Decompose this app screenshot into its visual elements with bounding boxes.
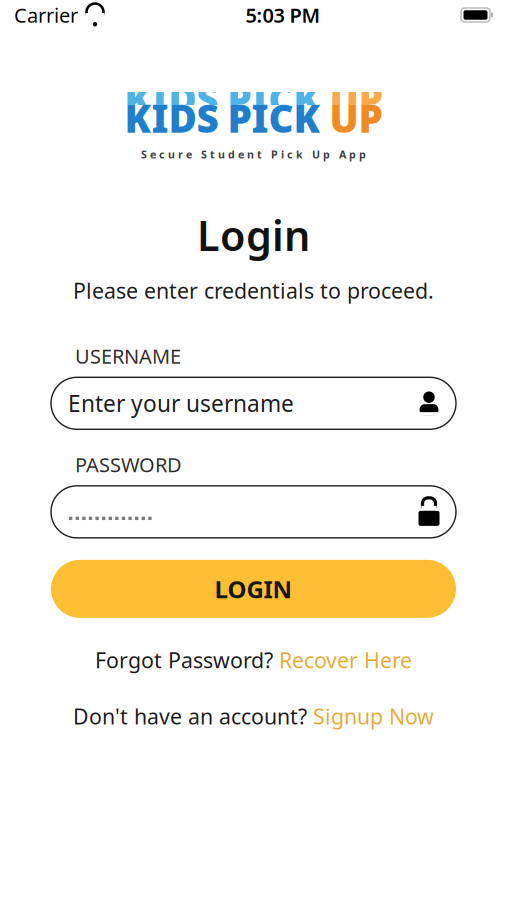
staticText: UP [329,92,382,143]
staticText: S e c u r e S t u d e n t P i c k U p A … [141,147,366,161]
staticText: UP [329,73,382,124]
staticText: Don't have an account? [73,702,313,730]
staticText: Signup Now [313,702,434,730]
button[interactable]: Don't have an account? [63,698,444,734]
staticText: PICK [227,92,320,143]
staticText: Carrier [14,2,78,28]
staticText: 5:03 PM [245,2,320,28]
staticText: Please enter credentials to proceed. [73,276,434,305]
staticText: PICK [227,73,320,124]
button[interactable]: Enter your username [51,377,456,429]
staticText: Forgot Password? [95,646,279,674]
button[interactable]: Forgot Password? [85,642,422,678]
staticText: PASSWORD [75,451,182,478]
button[interactable] [51,486,456,538]
staticText: KIDS [124,73,218,124]
staticText: Enter your username [68,388,294,418]
button[interactable]: LOGIN [51,560,456,618]
staticText: Recover Here [279,646,412,674]
staticText: LOGIN [214,573,292,605]
staticText: USERNAME [75,343,181,369]
staticText: Login [197,207,310,262]
staticText: KIDS [124,92,218,143]
